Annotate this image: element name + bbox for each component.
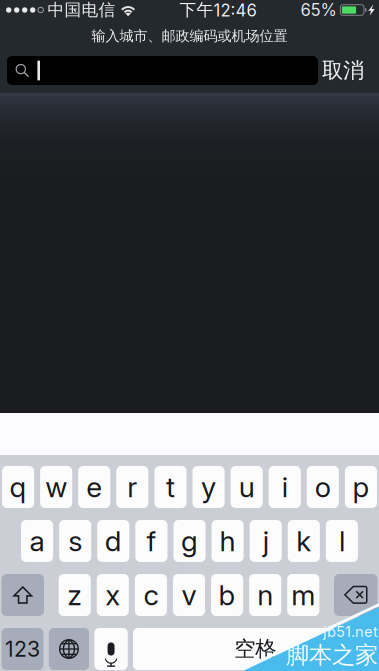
staticText: f — [146, 524, 156, 558]
staticText: h — [220, 524, 236, 558]
staticText: 取消 — [322, 57, 364, 84]
staticText: p — [352, 470, 369, 504]
staticText: k — [296, 524, 311, 558]
button[interactable]: f — [135, 520, 167, 562]
staticText: 脚本之家 — [286, 641, 378, 670]
button[interactable]: q — [2, 466, 34, 508]
button[interactable]: 123 — [1, 628, 43, 670]
staticText: i — [282, 470, 288, 504]
button[interactable]: l — [326, 520, 358, 562]
staticText: s — [68, 524, 82, 558]
staticText: u — [239, 470, 255, 504]
button[interactable]: i — [269, 466, 301, 508]
staticText: 中国电信 — [47, 0, 115, 20]
button[interactable]: s — [59, 520, 91, 562]
staticText: z — [67, 578, 82, 612]
staticText: v — [181, 578, 196, 612]
button[interactable]: e — [78, 466, 110, 508]
staticText: a — [30, 524, 45, 558]
button[interactable]: x — [97, 574, 129, 616]
button[interactable]: a — [21, 520, 53, 562]
staticText: j — [263, 524, 269, 558]
staticText: q — [9, 470, 26, 504]
button[interactable]: t — [154, 466, 186, 508]
button[interactable]: g — [173, 520, 205, 562]
button[interactable]: 取消 — [318, 52, 379, 89]
button[interactable]: k — [288, 520, 320, 562]
button[interactable]: c — [135, 574, 167, 616]
button[interactable]: Dictation — [94, 628, 128, 670]
staticText: c — [143, 578, 158, 612]
staticText: 123 — [5, 636, 40, 662]
button[interactable]: b — [211, 574, 243, 616]
staticText: r — [127, 470, 137, 504]
button[interactable]: j — [250, 520, 282, 562]
staticText: 输入城市、邮政编码或机场位置 — [91, 27, 287, 45]
staticText: b — [219, 578, 236, 612]
staticText: y — [201, 470, 216, 504]
button[interactable]: u — [231, 466, 263, 508]
button[interactable]: 空格 — [133, 628, 377, 670]
button[interactable]: o — [307, 466, 339, 508]
button[interactable]: y — [192, 466, 225, 508]
button[interactable]: Shift — [1, 574, 44, 616]
button[interactable]: Next keyboard — [49, 628, 89, 670]
button[interactable]: d — [97, 520, 129, 562]
staticText: jb51.net — [323, 623, 378, 641]
staticText: x — [105, 578, 120, 612]
staticText: d — [105, 524, 122, 558]
button[interactable]: p — [345, 466, 377, 508]
staticText: 下午12:46 — [180, 0, 257, 20]
button[interactable] — [7, 56, 318, 85]
button[interactable]: h — [211, 520, 244, 562]
staticText: l — [339, 524, 345, 558]
staticText: g — [181, 524, 198, 558]
button[interactable]: w — [40, 466, 72, 508]
staticText: 空格 — [234, 636, 276, 662]
button[interactable]: Delete — [334, 574, 377, 616]
button[interactable]: m — [287, 574, 319, 616]
button[interactable]: n — [249, 574, 281, 616]
staticText: w — [45, 470, 67, 504]
staticText: n — [257, 578, 273, 612]
staticText: m — [291, 578, 315, 612]
staticText: e — [86, 470, 102, 504]
button[interactable]: r — [116, 466, 148, 508]
button[interactable]: z — [59, 574, 91, 616]
button[interactable]: v — [173, 574, 205, 616]
staticText: 65% — [300, 0, 336, 20]
staticText: t — [166, 470, 175, 504]
staticText: o — [315, 470, 331, 504]
